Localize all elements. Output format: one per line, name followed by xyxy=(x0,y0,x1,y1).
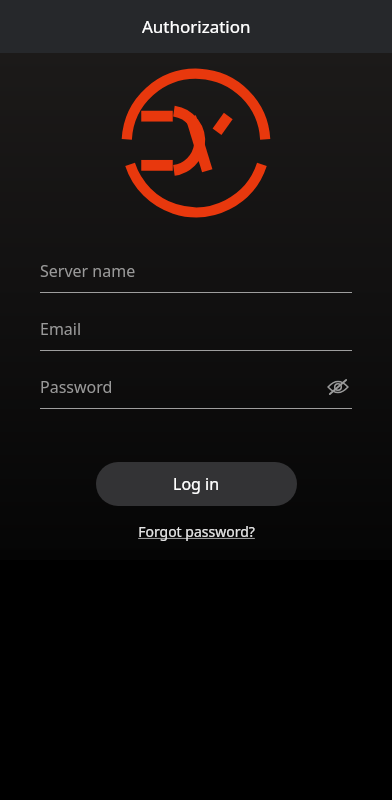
staticText: Forgot password? xyxy=(138,522,255,541)
staticText: Server name xyxy=(40,260,352,282)
staticText: Log in xyxy=(173,473,220,495)
button[interactable]: Password xyxy=(40,371,352,409)
staticText: Email xyxy=(40,318,352,340)
button[interactable]: Server name xyxy=(40,255,352,293)
staticText: Password xyxy=(40,376,324,398)
staticText: Authorization xyxy=(142,15,251,38)
button[interactable]: Forgot password? xyxy=(132,520,261,543)
button[interactable]: Log in xyxy=(96,462,297,506)
button[interactable]: Show password xyxy=(324,373,352,401)
button[interactable]: Email xyxy=(40,313,352,351)
